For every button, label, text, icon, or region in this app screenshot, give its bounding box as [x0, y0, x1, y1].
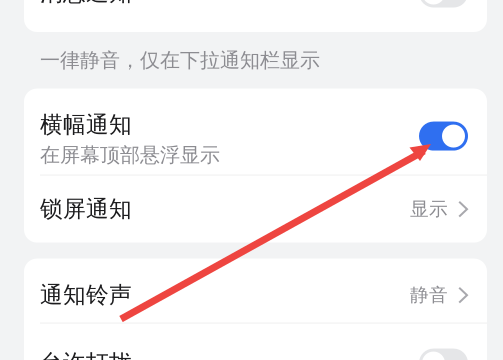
button[interactable]: 消息通知 [24, 0, 487, 32]
staticText: 显示 [410, 198, 448, 220]
staticText: 在屏幕顶部悬浮显示 [40, 143, 220, 167]
staticText: 横幅通知 [40, 111, 132, 139]
staticText: 锁屏通知 [40, 195, 132, 223]
button[interactable]: 允许打扰 [24, 324, 487, 360]
staticText: 允许打扰 [40, 349, 132, 360]
staticText: 消息通知 [40, 0, 132, 7]
staticText: 通知铃声 [40, 281, 132, 309]
staticText: 一律静音，仅在下拉通知栏显示 [40, 48, 320, 73]
staticText: 静音 [410, 284, 448, 306]
button[interactable]: 锁屏通知 [24, 176, 487, 243]
button[interactable]: 通知铃声 [24, 259, 487, 323]
button[interactable]: 横幅通知 [24, 89, 487, 175]
